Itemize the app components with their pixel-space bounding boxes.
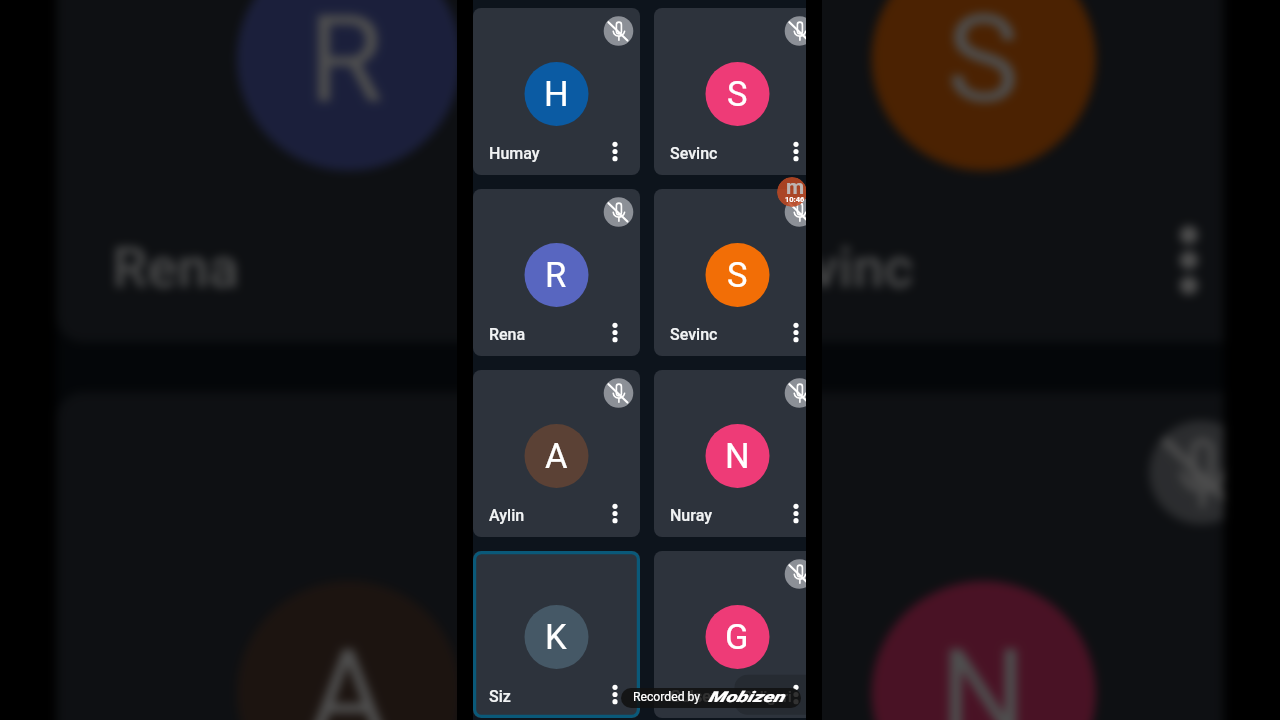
staticText: S xyxy=(947,0,1020,129)
staticText: Rena xyxy=(112,234,242,300)
staticText: A xyxy=(545,436,568,476)
staticText: H xyxy=(544,74,569,114)
staticText: Nuray xyxy=(670,506,712,525)
staticText: 3 digeri xyxy=(744,689,792,706)
staticText: Siz xyxy=(489,687,511,706)
staticText: R xyxy=(309,0,386,129)
staticText: N xyxy=(940,623,1028,720)
button[interactable]: Humay xyxy=(473,8,640,175)
staticText: 10:46 xyxy=(785,195,805,204)
staticText: R xyxy=(545,255,567,295)
staticText: Sevinc xyxy=(670,144,718,163)
staticText: K xyxy=(545,617,567,657)
staticText: Rena xyxy=(489,325,526,344)
button[interactable]: Rena xyxy=(473,189,640,356)
button[interactable]: Screen recorder xyxy=(777,177,806,207)
button[interactable]: Siz xyxy=(473,551,640,718)
button[interactable]: Aylin xyxy=(473,370,640,537)
staticText: Recorded by xyxy=(633,690,701,704)
staticText: m xyxy=(786,177,805,199)
staticText: Aylin xyxy=(489,506,525,525)
staticText: S xyxy=(727,74,748,114)
staticText: Humay xyxy=(489,144,540,163)
button[interactable]: Sevinc xyxy=(654,8,806,175)
staticText: Mobizen xyxy=(708,689,785,706)
staticText: G xyxy=(725,617,749,657)
button[interactable]: Gulsen xyxy=(654,551,806,718)
staticText: Sevinc xyxy=(747,234,915,300)
staticText: Sevinc xyxy=(670,325,718,344)
button[interactable]: Sevinc xyxy=(654,189,806,356)
staticText: Gulsen xyxy=(670,687,720,706)
button[interactable]: Nuray xyxy=(654,370,806,537)
staticText: N xyxy=(725,436,750,476)
staticText: S xyxy=(727,255,748,295)
staticText: A xyxy=(309,623,389,720)
